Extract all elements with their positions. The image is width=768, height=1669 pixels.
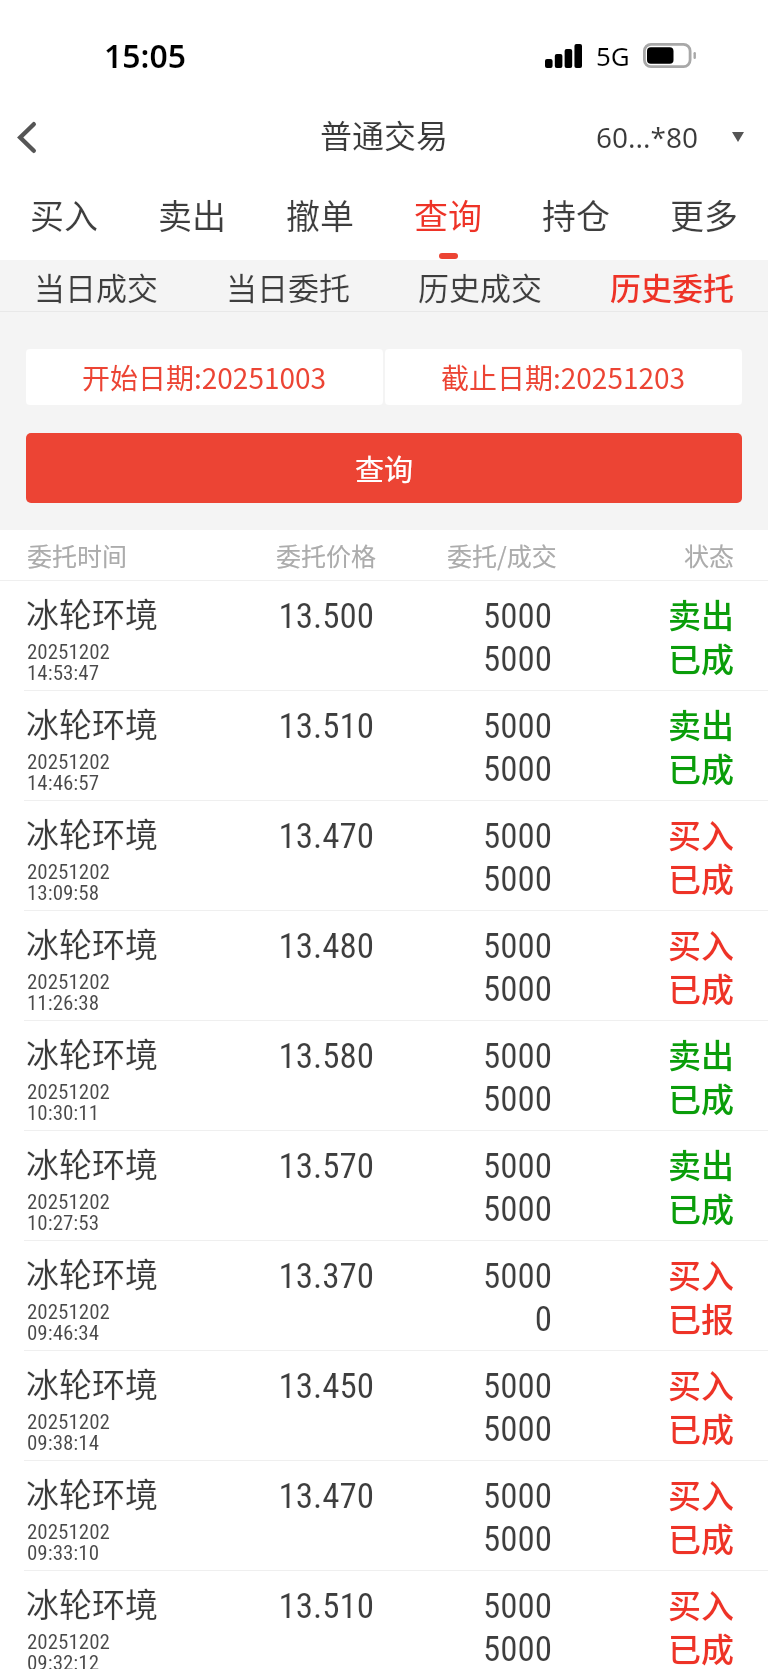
staticText: 09:46:34 [27, 1321, 100, 1346]
staticText: 买入 [668, 1470, 734, 1518]
button[interactable]: 历史委托 [576, 260, 768, 312]
staticText: 5000 [392, 969, 552, 1010]
staticText: 当日成交 [34, 264, 158, 309]
button[interactable]: 开始日期:20251003 [26, 349, 383, 405]
button[interactable]: 冰轮环境 [0, 1130, 768, 1240]
staticText: 开始日期:20251003 [82, 357, 327, 398]
staticText: 09:38:14 [27, 1431, 100, 1456]
staticText: 13.510 [214, 706, 374, 747]
staticText: 买入 [668, 1360, 734, 1408]
staticText: 冰轮环境 [26, 589, 158, 637]
staticText: 已成 [668, 1624, 734, 1669]
button[interactable]: 冰轮环境 [0, 580, 768, 690]
staticText: 15:05 [104, 34, 187, 78]
button[interactable]: 持仓 [512, 180, 640, 260]
staticText: 20251202 [27, 750, 110, 775]
button[interactable]: 撤单 [256, 180, 384, 260]
button[interactable]: Back [0, 95, 72, 180]
button[interactable]: 当日委托 [192, 260, 384, 312]
staticText: 5000 [392, 859, 552, 900]
staticText: 买入 [668, 1580, 734, 1628]
button[interactable]: 冰轮环境 [0, 1350, 768, 1460]
staticText: 5000 [392, 596, 552, 637]
staticText: 已成 [668, 634, 734, 682]
button[interactable]: 冰轮环境 [0, 1460, 768, 1570]
button[interactable]: 更多 [640, 180, 768, 260]
button[interactable]: 卖出 [128, 180, 256, 260]
staticText: 已成 [668, 1514, 734, 1562]
staticText: 委托/成交 [447, 537, 557, 573]
button[interactable]: 买入 [0, 180, 128, 260]
staticText: 冰轮环境 [26, 809, 158, 857]
staticText: 10:27:53 [27, 1211, 100, 1236]
staticText: 13.500 [214, 596, 374, 637]
button[interactable]: 截止日期:20251203 [385, 349, 742, 405]
staticText: 已成 [668, 1184, 734, 1232]
staticText: 5000 [392, 1476, 552, 1517]
button[interactable]: 冰轮环境 [0, 690, 768, 800]
staticText: 13:09:58 [27, 881, 100, 906]
staticText: 历史成交 [418, 264, 542, 309]
staticText: 09:32:12 [27, 1651, 100, 1669]
button[interactable]: 冰轮环境 [0, 910, 768, 1020]
button[interactable]: 冰轮环境 [0, 1240, 768, 1350]
staticText: 委托价格 [276, 537, 377, 573]
staticText: 20251202 [27, 1630, 110, 1655]
staticText: 卖出 [668, 1140, 734, 1188]
button[interactable]: 当日成交 [0, 260, 192, 312]
staticText: 20251202 [27, 1190, 110, 1215]
staticText: 5000 [392, 1079, 552, 1120]
staticText: 已成 [668, 1404, 734, 1452]
staticText: 5000 [392, 1189, 552, 1230]
staticText: 13.580 [214, 1036, 374, 1077]
staticText: 5000 [392, 816, 552, 857]
staticText: 13.470 [214, 1476, 374, 1517]
staticText: 查询 [414, 190, 482, 239]
staticText: 冰轮环境 [26, 1359, 158, 1407]
button[interactable]: 查询 [26, 433, 742, 503]
staticText: 已成 [668, 1074, 734, 1122]
staticText: 冰轮环境 [26, 1469, 158, 1517]
staticText: 普通交易 [320, 111, 449, 157]
staticText: 买入 [668, 920, 734, 968]
staticText: 持仓 [542, 190, 610, 239]
staticText: 卖出 [158, 190, 226, 239]
staticText: 20251202 [27, 1080, 110, 1105]
staticText: 买入 [668, 810, 734, 858]
button[interactable]: 60...*80 [598, 95, 768, 180]
button[interactable]: 冰轮环境 [0, 1570, 768, 1669]
staticText: 14:46:57 [27, 771, 100, 796]
staticText: 买入 [30, 190, 98, 239]
staticText: 5000 [392, 1366, 552, 1407]
staticText: 截止日期:20251203 [441, 357, 686, 398]
staticText: 卖出 [668, 590, 734, 638]
staticText: 更多 [670, 190, 738, 239]
staticText: 5000 [392, 706, 552, 747]
staticText: 冰轮环境 [26, 699, 158, 747]
staticText: 13.510 [214, 1586, 374, 1627]
staticText: 10:30:11 [27, 1101, 100, 1126]
staticText: 5000 [392, 1036, 552, 1077]
staticText: 历史委托 [610, 264, 734, 309]
staticText: 已成 [668, 964, 734, 1012]
staticText: 5000 [392, 1256, 552, 1297]
staticText: 11:26:38 [27, 991, 100, 1016]
staticText: 冰轮环境 [26, 1029, 158, 1077]
staticText: 20251202 [27, 1410, 110, 1435]
button[interactable]: 冰轮环境 [0, 800, 768, 910]
staticText: 5000 [392, 1519, 552, 1560]
staticText: 当日委托 [226, 264, 350, 309]
staticText: 委托时间 [27, 537, 128, 573]
staticText: 5000 [392, 639, 552, 680]
staticText: 卖出 [668, 1030, 734, 1078]
staticText: 撤单 [286, 190, 354, 239]
staticText: 0 [392, 1299, 552, 1340]
staticText: 13.370 [214, 1256, 374, 1297]
button[interactable]: 历史成交 [384, 260, 576, 312]
staticText: 13.570 [214, 1146, 374, 1187]
staticText: 状态 [684, 537, 735, 573]
staticText: 5000 [392, 926, 552, 967]
button[interactable]: 查询 [384, 180, 512, 260]
staticText: 20251202 [27, 1520, 110, 1545]
button[interactable]: 冰轮环境 [0, 1020, 768, 1130]
